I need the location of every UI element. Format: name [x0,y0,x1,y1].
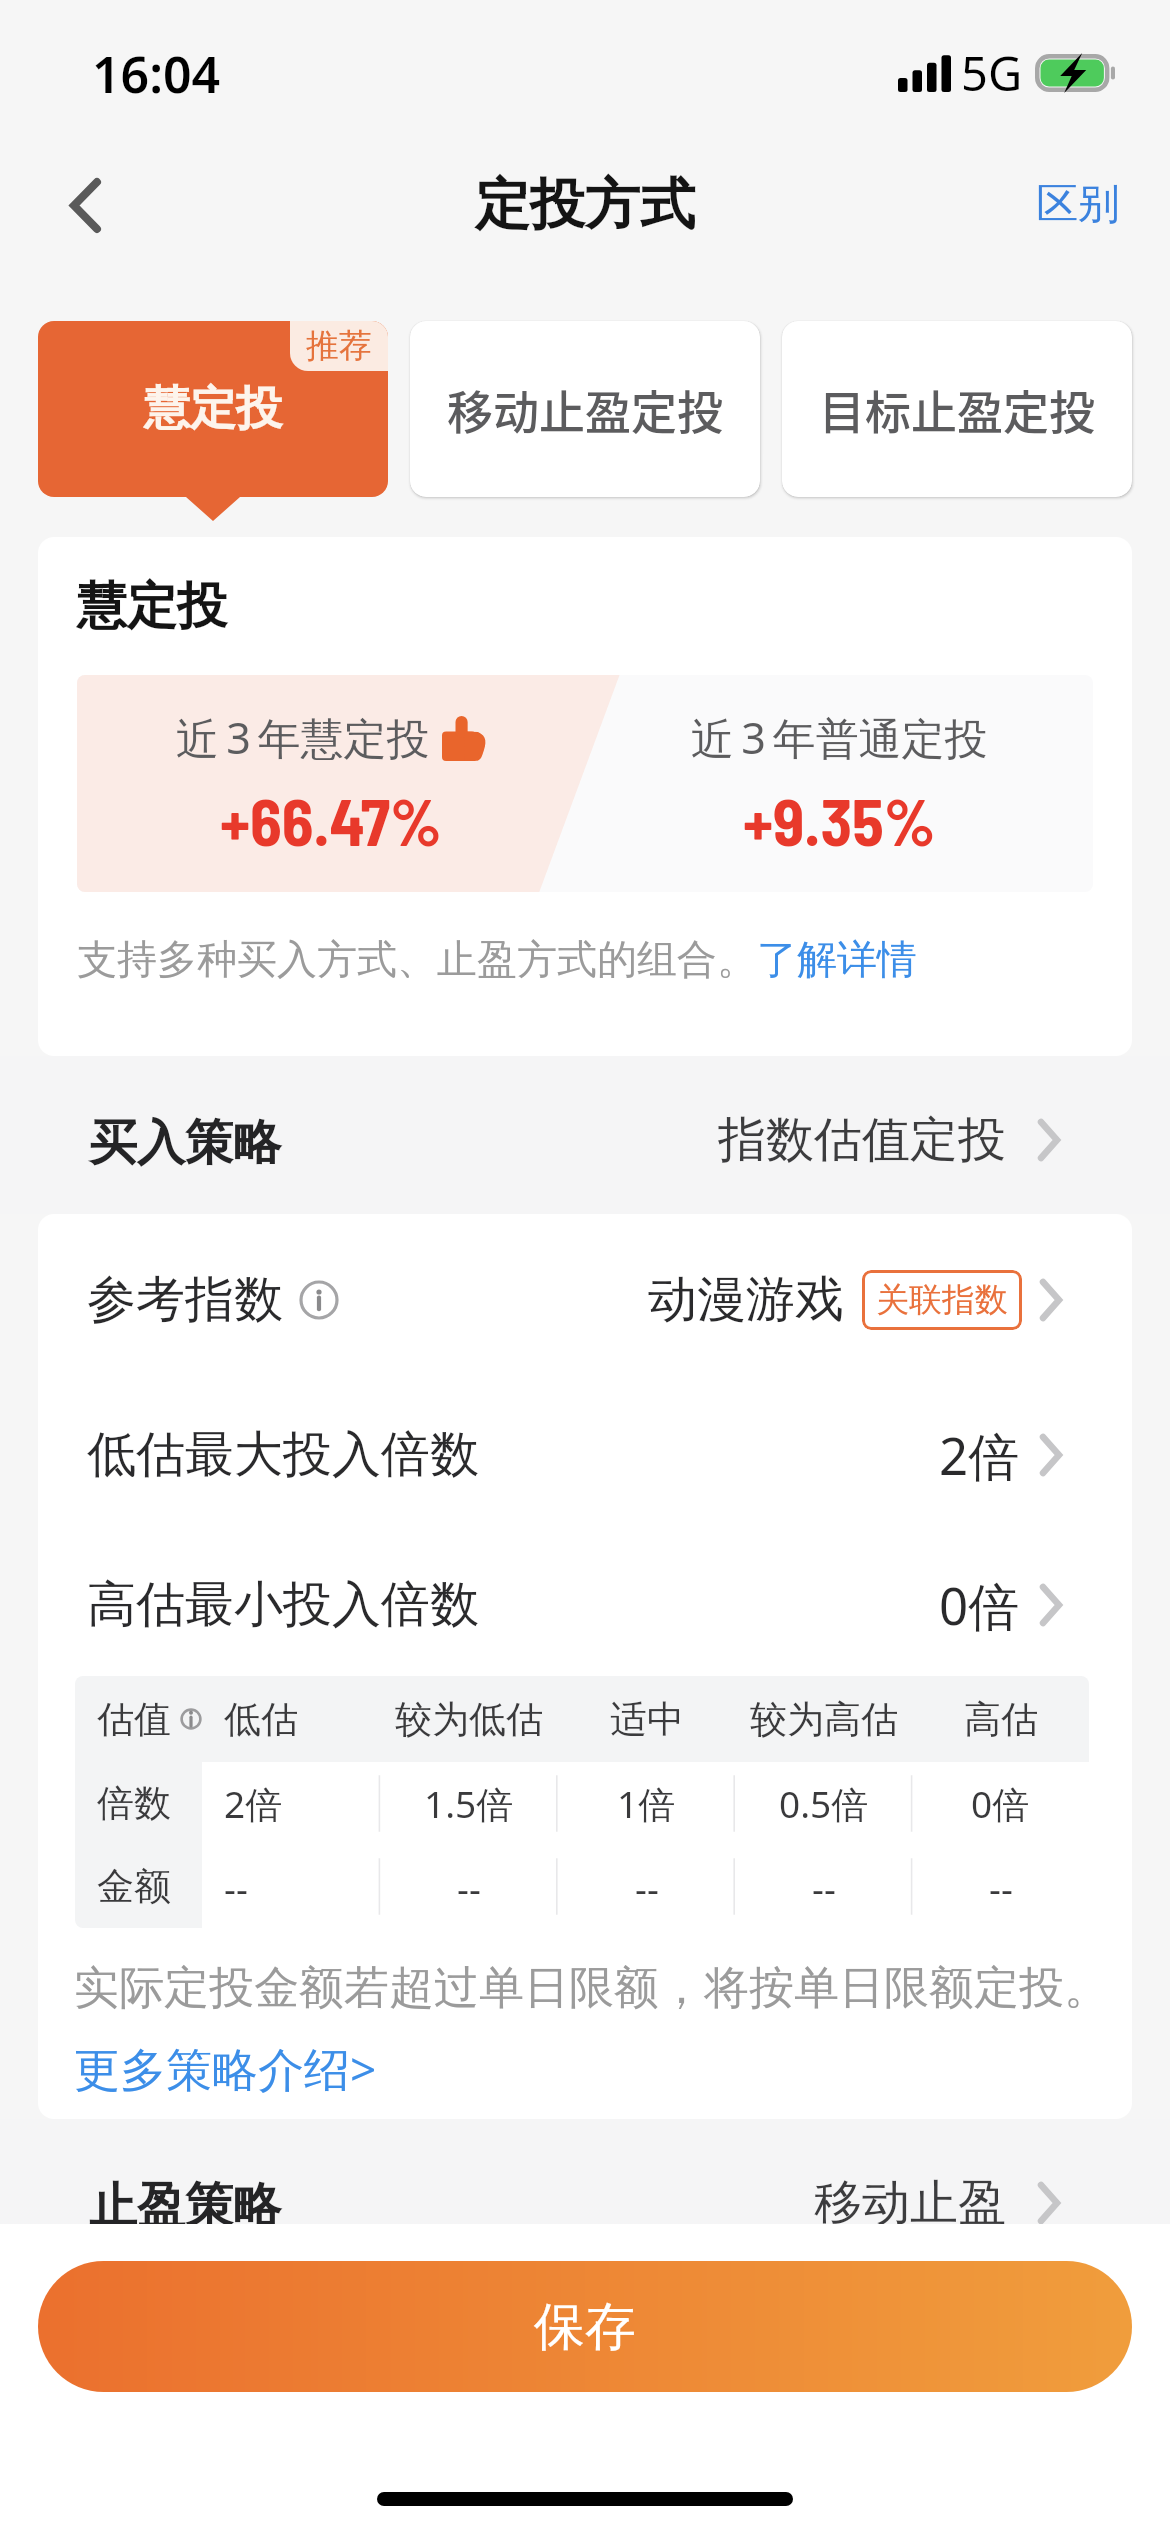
button[interactable]: 目标止盈定投 [782,321,1132,497]
staticText: 买入策略 [89,1113,281,1173]
staticText: 更多策略介绍> [74,2037,377,2100]
staticText: 定投方式 [475,170,695,239]
staticText: 金额 [97,1863,171,1910]
staticText: 了解详情 [757,934,917,984]
button[interactable]: 参考指数 [38,1214,1132,1374]
staticText: 慧定投 [77,575,227,638]
staticText: 高估最小投入倍数 [87,1574,479,1636]
staticText: 估值 [97,1696,171,1743]
staticText: 较为低估 [395,1696,543,1743]
staticText: 动漫游戏 [648,1269,844,1331]
button[interactable]: Back [37,157,133,253]
button[interactable]: 了解详情 [757,934,917,984]
staticText: 低估最大投入倍数 [87,1424,479,1486]
staticText: 支持多种买入方式、止盈方式的组合。 [77,934,757,984]
staticText: 适中 [610,1696,684,1743]
staticText: 参考指数 [87,1269,283,1331]
staticText: 5G [961,41,1023,105]
button[interactable]: 低估最大投入倍数 [38,1374,1132,1524]
staticText: 1.5倍 [424,1778,514,1829]
staticText: -- [989,1862,1013,1912]
button[interactable]: 移动止盈定投 [410,321,760,497]
button[interactable]: About reference index [299,1280,339,1320]
staticText: 倍数 [97,1780,171,1827]
staticText: 移动止盈定投 [447,376,723,443]
staticText: 1倍 [617,1778,676,1829]
staticText: 0.5倍 [779,1778,869,1829]
staticText: 指数估值定投 [718,1110,1006,1170]
staticText: 止盈策略 [89,2176,281,2236]
staticText: 0倍 [939,1570,1020,1640]
staticText: -- [812,1862,836,1912]
staticText: 移动止盈 [814,2173,1006,2233]
staticText: 慧定投 [144,380,282,438]
staticText: -- [224,1862,248,1912]
staticText: 2倍 [224,1778,283,1829]
button[interactable]: 区别 [1018,160,1138,249]
staticText: 区别 [1036,178,1120,231]
button[interactable]: 保存 [38,2261,1132,2392]
staticText: 2倍 [939,1420,1020,1490]
staticText: 低估 [224,1696,298,1743]
button[interactable]: 止盈策略 [0,2119,1170,2277]
staticText: 推荐 [306,325,372,367]
staticText: 近 3 年慧定投 [176,708,430,767]
staticText: 近 3 年普通定投 [691,708,988,767]
staticText: 较为高估 [750,1696,898,1743]
staticText: 16:04 [92,40,221,108]
button[interactable]: 买入策略 [0,1056,1170,1214]
staticText: -- [635,1862,659,1912]
staticText: 目标止盈定投 [819,376,1095,443]
staticText: 实际定投金额若超过单日限额，将按单日限额定投。 [74,1960,1109,2017]
staticText: 0倍 [971,1778,1030,1829]
staticText: 保存 [534,2295,636,2359]
staticText: -- [457,1862,481,1912]
button[interactable]: 高估最小投入倍数 [38,1524,1132,1674]
staticText: 关联指数 [876,1279,1008,1321]
staticText: 高估 [964,1696,1038,1743]
button[interactable]: 慧定投 [38,321,388,497]
staticText: +9.35% [743,781,936,859]
button[interactable]: 更多策略介绍> [74,2037,377,2100]
staticText: +66.47% [220,781,442,859]
